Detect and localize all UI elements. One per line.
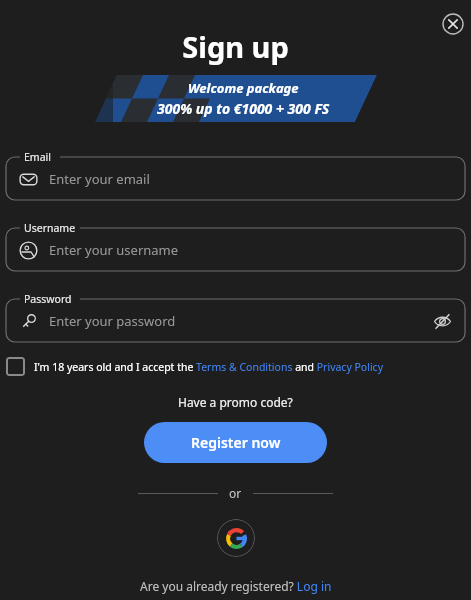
staticText: Email bbox=[24, 150, 51, 164]
staticText: Enter your email bbox=[49, 170, 150, 188]
staticText: Password bbox=[24, 292, 72, 306]
button[interactable]: Enter your email bbox=[6, 157, 465, 200]
button[interactable]: Register now bbox=[144, 422, 327, 463]
button[interactable]: Toggle password visibility bbox=[429, 308, 455, 334]
button[interactable]: Sign up with Google bbox=[217, 519, 255, 557]
button[interactable]: Have a promo code? bbox=[178, 394, 293, 410]
staticText: Welcome package bbox=[188, 79, 299, 97]
staticText: Sign up bbox=[0, 27, 471, 66]
staticText: 300% up to €1000 + 300 FS bbox=[157, 99, 330, 118]
staticText: Register now bbox=[191, 433, 281, 452]
staticText: Username bbox=[24, 221, 76, 235]
button[interactable]: Enter your username bbox=[6, 228, 465, 271]
staticText: I'm 18 years old and I accept the Terms … bbox=[34, 360, 383, 374]
button[interactable]: Enter your password bbox=[6, 299, 465, 342]
staticText: or bbox=[229, 485, 242, 501]
staticText: Enter your password bbox=[49, 312, 176, 330]
staticText: Enter your username bbox=[49, 241, 179, 259]
button[interactable]: I'm 18 years old and I accept the Terms … bbox=[6, 357, 465, 376]
button[interactable]: Close bbox=[437, 8, 469, 40]
button[interactable]: Are you already registered? Log in bbox=[140, 578, 332, 594]
